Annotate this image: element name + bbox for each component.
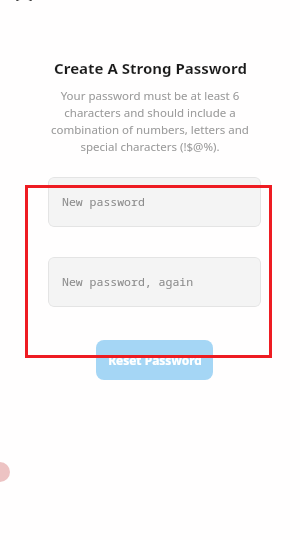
staticText: Your password must be at least 6 charact… xyxy=(38,88,262,155)
staticText: New password, again xyxy=(62,274,194,290)
staticText: New password xyxy=(62,194,145,210)
button[interactable]: New password xyxy=(48,177,261,227)
staticText: Reset Password xyxy=(108,352,202,368)
button[interactable]: Reset Password xyxy=(96,340,213,380)
staticText: Create A Strong Password xyxy=(54,58,247,78)
button[interactable]: New password, again xyxy=(48,257,261,307)
button[interactable]: Close xyxy=(14,0,34,3)
